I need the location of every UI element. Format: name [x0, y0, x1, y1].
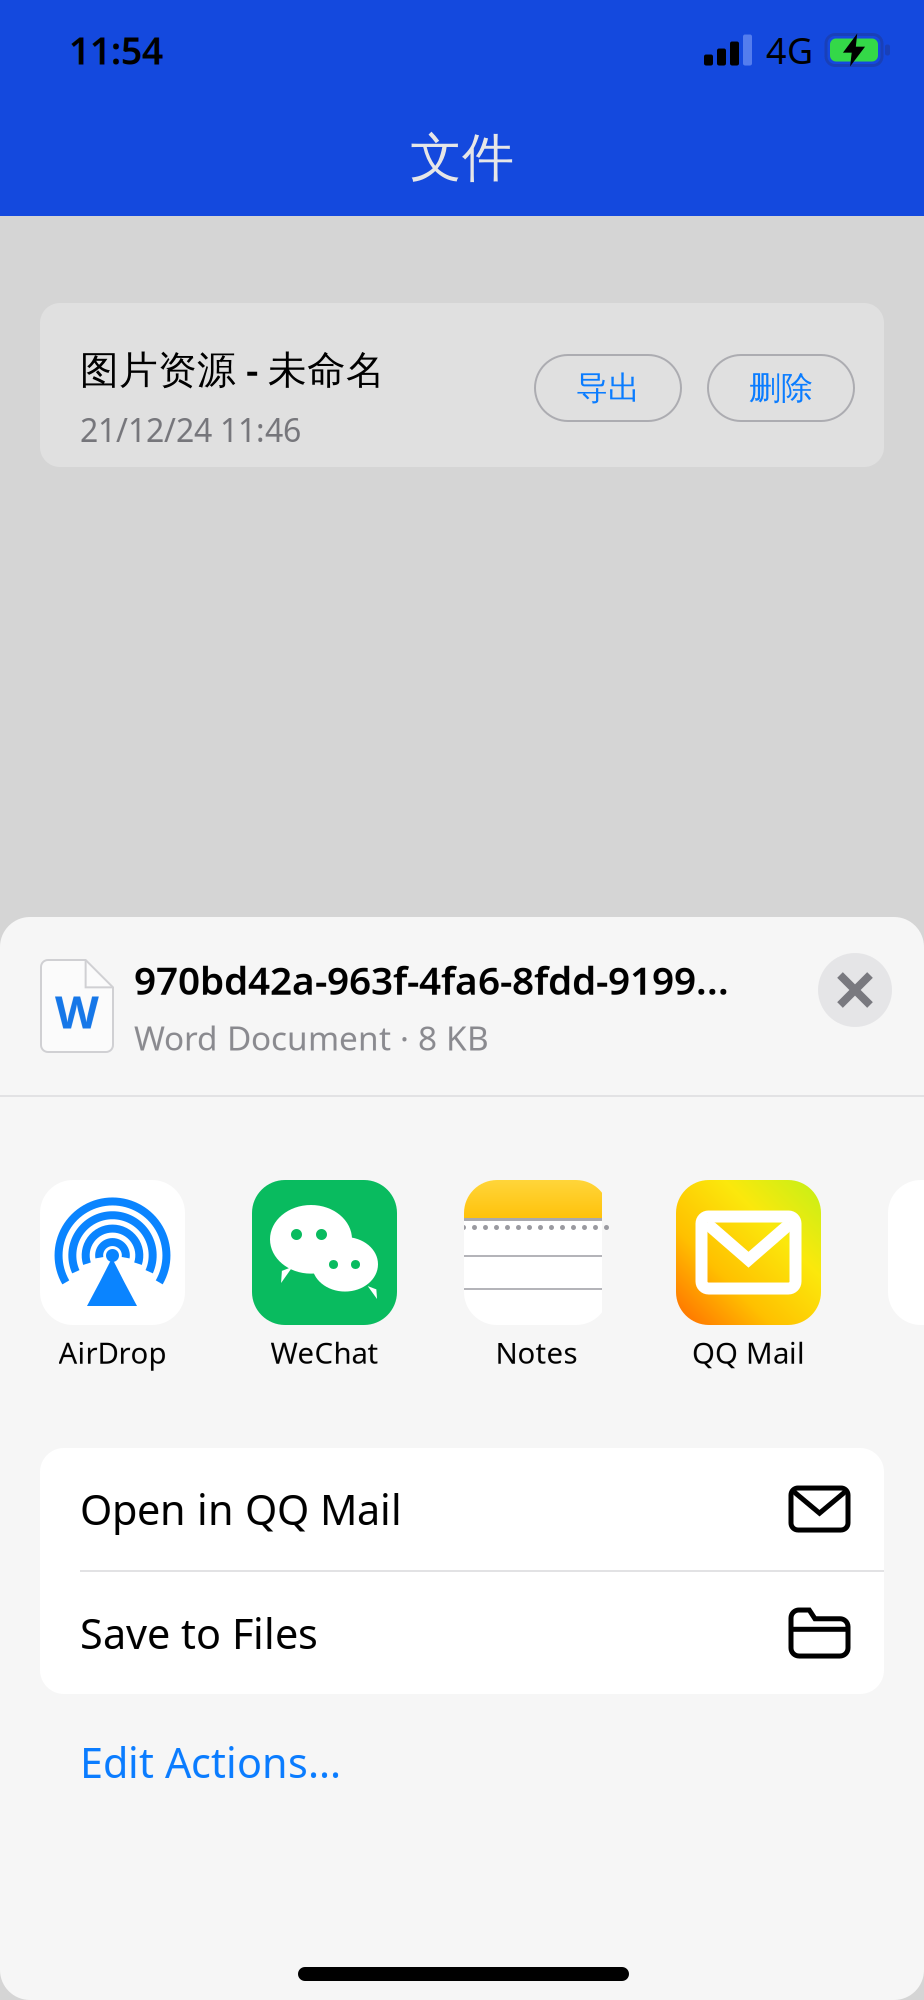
staticText: 970bd42a-963f-4fa6-8fdd-9199... — [134, 954, 729, 1005]
staticText: 导出 — [576, 368, 640, 408]
button[interactable]: QQ Mail — [676, 1180, 821, 1372]
staticText: QQ Mail — [692, 1333, 805, 1372]
staticText: 删除 — [749, 368, 813, 408]
button[interactable]: Open in QQ Mail — [40, 1448, 884, 1570]
staticText: Open in QQ Mail — [80, 1482, 402, 1536]
staticText: WeChat — [270, 1333, 378, 1372]
button[interactable]: AirDrop — [40, 1180, 185, 1372]
button[interactable]: Edit Actions... — [0, 1710, 924, 1814]
staticText: AirDrop — [58, 1333, 166, 1372]
staticText: Word Document · 8 KB — [134, 1015, 489, 1060]
staticText: Edit Actions... — [80, 1735, 341, 1789]
button[interactable]: Remove attachment — [818, 953, 892, 1027]
staticText: 图片资源 - 未命名 — [80, 343, 385, 394]
staticText: 21/12/24 11:46 — [80, 408, 301, 451]
button[interactable]: 删除 — [708, 355, 854, 421]
staticText: Notes — [495, 1333, 577, 1372]
staticText: W — [55, 981, 99, 1041]
staticText: 11:54 — [69, 25, 163, 75]
button[interactable]: 导出 — [535, 355, 681, 421]
button[interactable]: Notes — [464, 1180, 609, 1372]
staticText: Save to Files — [80, 1606, 318, 1660]
staticText: 4G — [766, 26, 813, 74]
button[interactable]: WeChat — [252, 1180, 397, 1372]
staticText: 文件 — [410, 126, 514, 190]
button[interactable]: Save to Files — [40, 1572, 884, 1694]
